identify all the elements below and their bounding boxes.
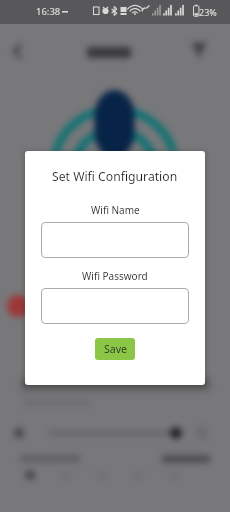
button[interactable] xyxy=(41,222,189,258)
button[interactable]: Save xyxy=(95,338,135,360)
staticText: 23% xyxy=(199,6,217,18)
staticText: Set Wifi Configuration xyxy=(52,168,178,185)
staticText: 16:38 xyxy=(36,5,61,18)
button[interactable] xyxy=(41,288,189,324)
staticText: Wifi Name xyxy=(91,203,140,217)
staticText: Save xyxy=(104,342,127,356)
staticText: Wifi Password xyxy=(82,269,148,283)
